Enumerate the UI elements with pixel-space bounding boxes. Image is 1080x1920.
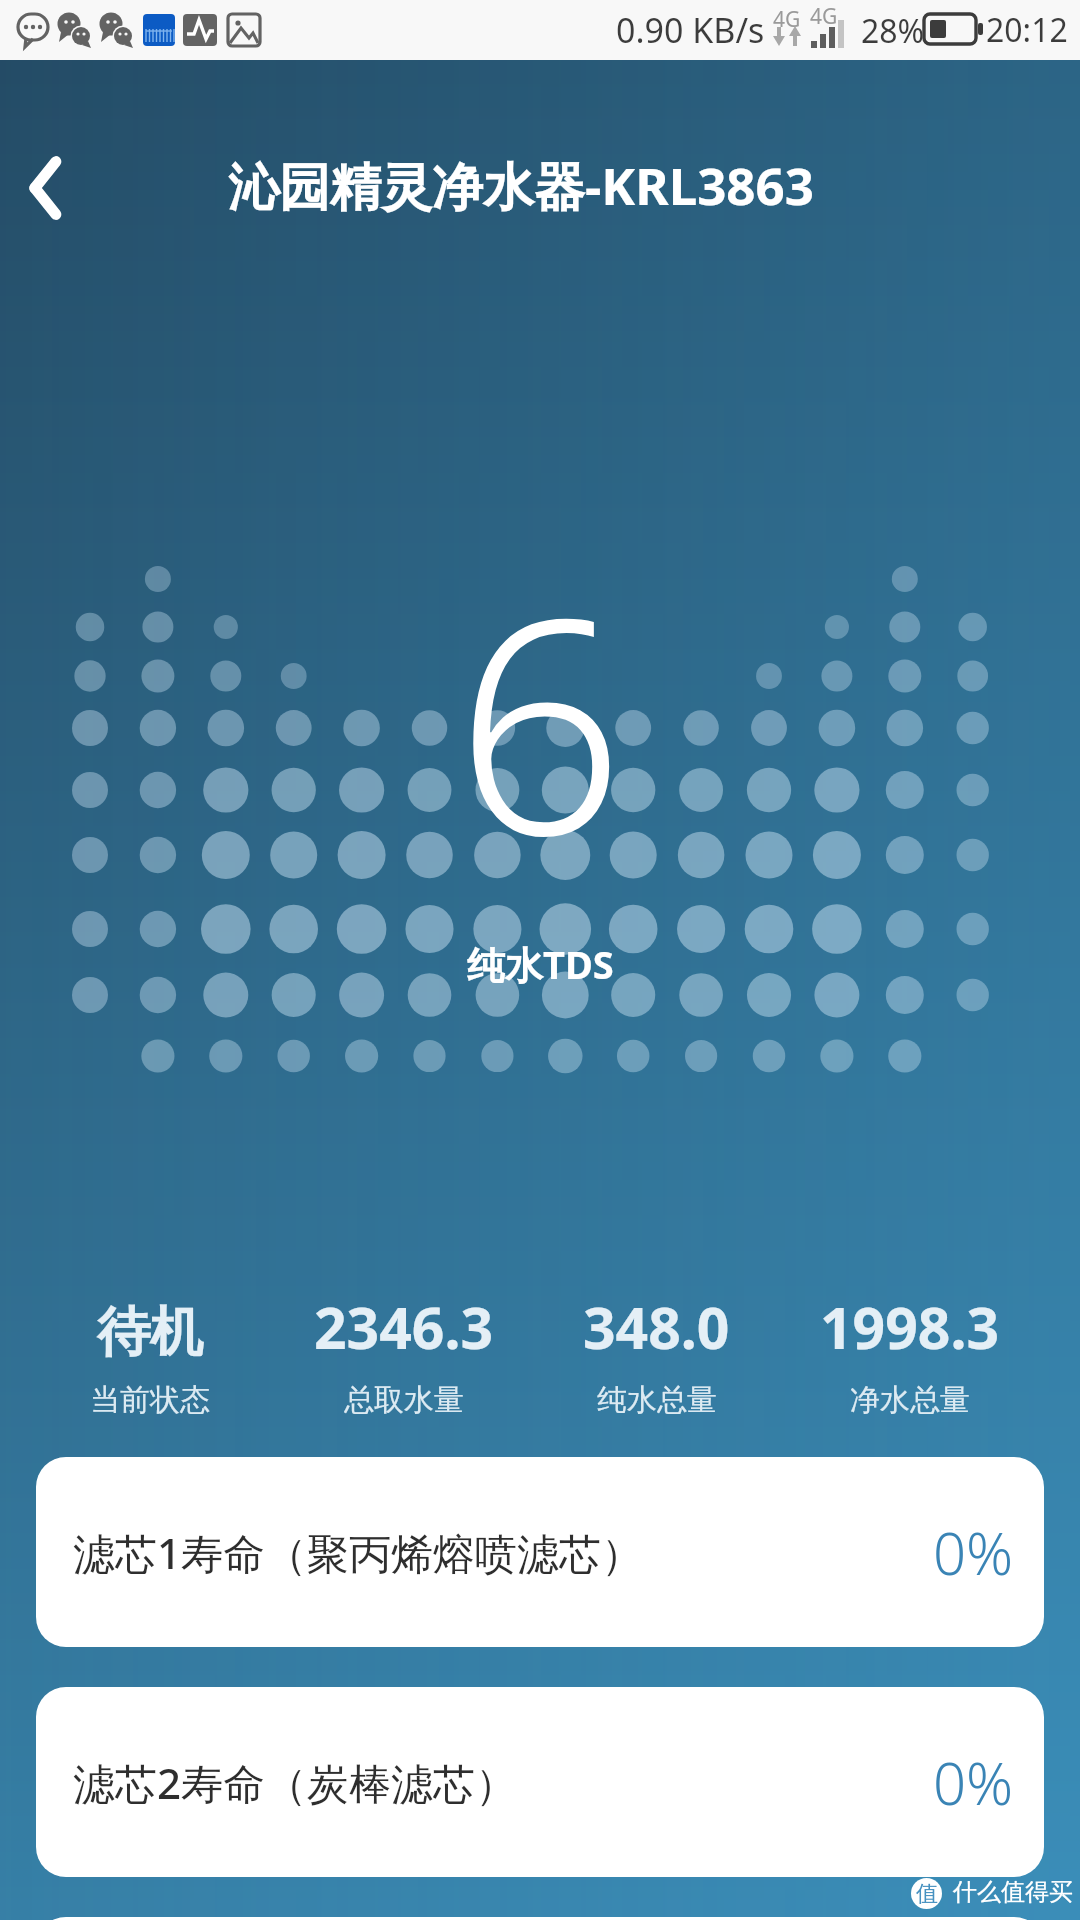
staticText: 0.90 KB/s [616, 7, 765, 53]
staticText: 348.0 [583, 1288, 730, 1366]
button[interactable]: 348.0 [530, 1299, 783, 1439]
staticText: 6 [455, 517, 625, 922]
staticText: 纯水TDS [467, 938, 614, 990]
staticText: 值 [916, 1880, 938, 1908]
staticText: 1998.3 [820, 1288, 1000, 1366]
button[interactable]: 2346.3 [277, 1299, 530, 1439]
staticText: 当前状态 [90, 1381, 210, 1419]
button[interactable]: Back [14, 155, 76, 221]
staticText: 滤芯2寿命（炭棒滤芯） [73, 1754, 518, 1811]
staticText: 待机 [97, 1299, 203, 1366]
button[interactable]: 滤芯3寿命（超滤膜滤芯） [36, 1917, 1044, 1920]
staticText: 沁园精灵净水器-KRL3863 [228, 150, 814, 220]
staticText: 20:12 [986, 8, 1068, 52]
staticText: 0% [933, 1513, 1014, 1592]
button[interactable]: 滤芯2寿命（炭棒滤芯） [36, 1687, 1044, 1877]
button[interactable]: 1998.3 [783, 1299, 1036, 1439]
staticText: 纯水总量 [597, 1381, 717, 1419]
staticText: 滤芯1寿命（聚丙烯熔喷滤芯） [73, 1524, 644, 1581]
button[interactable]: 滤芯1寿命（聚丙烯熔喷滤芯） [36, 1457, 1044, 1647]
button[interactable]: 待机 [23, 1299, 277, 1439]
staticText: 4G [810, 2, 838, 31]
staticText: 什么值得买 [953, 1877, 1073, 1907]
staticText: 2346.3 [314, 1288, 494, 1366]
staticText: 0% [933, 1743, 1014, 1822]
staticText: 总取水量 [344, 1381, 464, 1419]
staticText: 28% [861, 9, 925, 53]
staticText: 净水总量 [850, 1381, 970, 1419]
staticText: 4G [773, 5, 801, 34]
